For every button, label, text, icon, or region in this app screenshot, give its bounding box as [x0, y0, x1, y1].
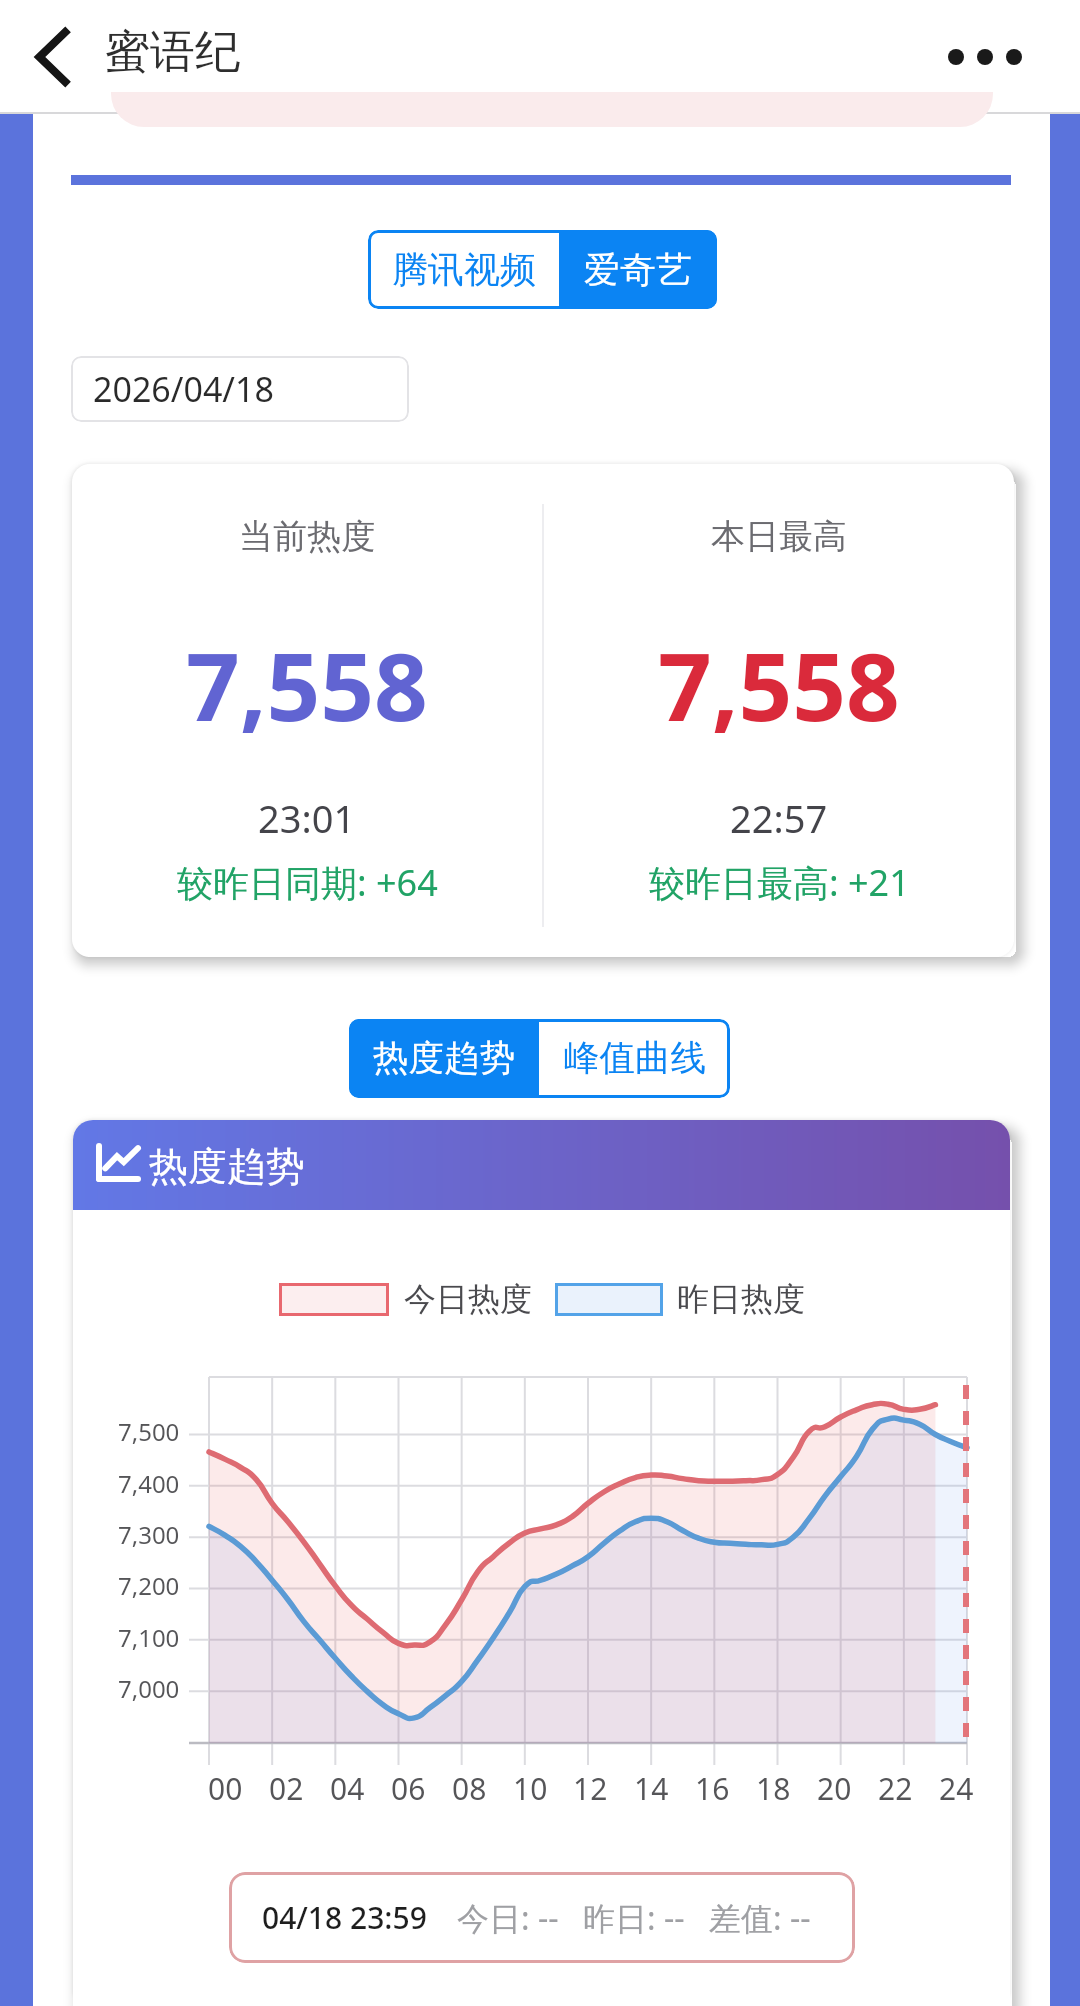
staticText: 腾讯视频: [392, 247, 536, 292]
staticText: 7,400: [118, 1467, 180, 1500]
button[interactable]: 峰值曲线: [539, 1019, 730, 1098]
button[interactable]: More options: [940, 22, 1030, 92]
staticText: 较昨日同期: +64: [177, 858, 438, 907]
staticText: 02: [269, 1768, 304, 1809]
staticText: 7,200: [118, 1569, 180, 1602]
staticText: 04/18 23:59: [262, 1897, 427, 1938]
staticText: 06: [391, 1768, 426, 1809]
staticText: 本日最高: [711, 515, 847, 558]
staticText: 16: [695, 1768, 730, 1809]
staticText: 20: [817, 1768, 852, 1809]
staticText: 22:57: [730, 792, 828, 844]
staticText: 7,100: [118, 1621, 180, 1654]
button[interactable]: 腾讯视频: [368, 230, 559, 309]
staticText: 22: [878, 1768, 913, 1809]
staticText: 较昨日最高: +21: [649, 858, 910, 907]
staticText: 今日: --: [457, 1896, 559, 1940]
staticText: 10: [513, 1768, 548, 1809]
button[interactable]: 爱奇艺: [559, 230, 717, 309]
staticText: 18: [756, 1768, 791, 1809]
staticText: 7,500: [118, 1415, 180, 1448]
staticText: 23:01: [258, 792, 356, 844]
staticText: 昨日: --: [583, 1896, 685, 1940]
staticText: 爱奇艺: [584, 247, 692, 292]
staticText: 12: [573, 1768, 608, 1809]
staticText: 7,558: [186, 621, 428, 749]
staticText: 昨日热度: [677, 1279, 805, 1319]
staticText: 00: [208, 1768, 243, 1809]
staticText: 热度趋势: [149, 1142, 305, 1191]
staticText: 14: [634, 1768, 669, 1809]
staticText: 04: [330, 1768, 365, 1809]
staticText: 当前热度: [239, 515, 375, 558]
staticText: 24: [939, 1768, 974, 1809]
staticText: 7,558: [658, 621, 900, 749]
staticText: 7,300: [118, 1518, 180, 1551]
button[interactable]: 2026/04/18: [71, 356, 409, 422]
button[interactable]: Back: [22, 22, 82, 92]
button[interactable]: 04/18 23:59: [229, 1872, 855, 1963]
staticText: 2026/04/18: [93, 366, 274, 412]
staticText: 蜜语纪: [105, 24, 240, 81]
staticText: 今日热度: [404, 1279, 532, 1319]
button[interactable]: 热度趋势: [349, 1019, 539, 1098]
staticText: 08: [452, 1768, 487, 1809]
staticText: 7,000: [118, 1672, 180, 1705]
staticText: 热度趋势: [373, 1036, 515, 1081]
staticText: 峰值曲线: [564, 1036, 706, 1081]
staticText: 差值: --: [709, 1896, 811, 1940]
